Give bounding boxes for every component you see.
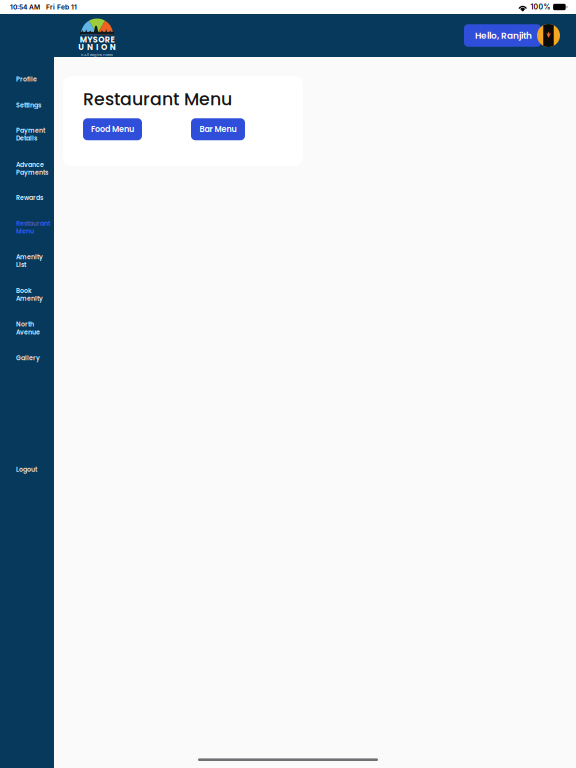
staticText: Fri Feb 11 xyxy=(46,3,77,11)
staticText: Restaurant Menu xyxy=(83,87,232,111)
staticText: Amenity xyxy=(16,253,43,261)
staticText: N xyxy=(87,42,93,53)
staticText: Menu xyxy=(16,227,34,236)
button[interactable]: Logout xyxy=(0,460,54,479)
staticText: E xyxy=(110,34,114,45)
button[interactable]: Book xyxy=(0,281,54,308)
staticText: Hello, Ranjith xyxy=(475,29,532,42)
staticText: R xyxy=(105,34,110,45)
staticText: M xyxy=(80,34,87,45)
staticText: Settings xyxy=(16,101,41,110)
button[interactable]: Amenity xyxy=(0,248,54,274)
staticText: N xyxy=(110,42,116,53)
button[interactable]: Gallery xyxy=(0,349,54,367)
button[interactable]: Hello, Ranjith xyxy=(464,14,560,57)
staticText: Payments xyxy=(16,168,48,177)
staticText: North xyxy=(16,320,34,329)
staticText: List xyxy=(16,260,26,269)
staticText: Payment xyxy=(16,126,45,135)
staticText: Restaurant xyxy=(16,219,50,228)
staticText: Gallery xyxy=(16,354,40,362)
staticText: O xyxy=(101,42,107,53)
staticText: Details xyxy=(16,134,37,143)
button[interactable]: Bar Menu xyxy=(191,118,245,140)
staticText: O xyxy=(98,34,104,45)
staticText: Advance xyxy=(16,160,44,169)
staticText: Food Menu xyxy=(91,124,134,135)
button[interactable]: North xyxy=(0,315,54,341)
staticText: Profile xyxy=(16,75,37,84)
staticText: Rewards xyxy=(16,193,43,202)
button[interactable]: Payment xyxy=(0,121,54,148)
staticText: Logout xyxy=(16,465,37,474)
staticText: Bar Menu xyxy=(199,124,236,135)
staticText: I xyxy=(96,42,98,53)
button[interactable]: Rewards xyxy=(0,188,54,207)
button[interactable]: Restaurant xyxy=(0,214,54,241)
staticText: 10:54 AM xyxy=(10,3,40,11)
button[interactable]: Advance xyxy=(0,155,54,182)
staticText: Avenue xyxy=(16,328,40,337)
staticText: S xyxy=(93,34,98,45)
staticText: 100% xyxy=(531,3,551,11)
button[interactable]: Food Menu xyxy=(83,118,142,140)
button[interactable]: Settings xyxy=(0,96,54,114)
staticText: Amenity xyxy=(16,294,43,303)
button[interactable]: Profile xyxy=(0,70,54,89)
staticText: It All Begins Here!! xyxy=(81,52,113,57)
staticText: Book xyxy=(16,286,32,295)
staticText: Y xyxy=(87,34,92,45)
staticText: U xyxy=(78,42,84,53)
